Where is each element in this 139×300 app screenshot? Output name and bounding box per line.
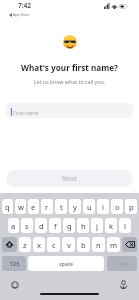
staticText: x <box>37 240 41 250</box>
staticText: a <box>11 221 16 231</box>
staticText: e <box>31 202 36 212</box>
button[interactable]: space <box>28 256 104 271</box>
button[interactable]: n <box>92 237 105 252</box>
button[interactable]: e <box>28 199 39 214</box>
staticText: space <box>59 260 74 267</box>
button[interactable]: j <box>91 218 103 233</box>
staticText: n <box>96 240 101 250</box>
staticText: 123 <box>10 260 19 267</box>
button[interactable]: y <box>69 199 81 214</box>
button[interactable]: x <box>33 237 45 252</box>
staticText: u <box>87 202 92 212</box>
staticText: m <box>110 240 118 250</box>
button[interactable]: g <box>63 218 75 233</box>
staticText: z <box>23 240 27 250</box>
staticText: v <box>67 240 71 250</box>
staticText: j <box>96 221 98 231</box>
staticText: o <box>115 202 120 212</box>
button[interactable]: w <box>15 199 26 214</box>
button[interactable]: s <box>21 218 33 233</box>
button[interactable]: r <box>41 199 53 214</box>
button[interactable]: 123 <box>2 256 26 271</box>
staticText: r <box>45 202 49 212</box>
button[interactable]: First name <box>6 103 133 118</box>
button[interactable]: next <box>107 256 137 271</box>
staticText: b <box>81 240 86 250</box>
staticText: next <box>117 260 128 267</box>
staticText: y <box>73 202 77 212</box>
staticText: d <box>39 221 44 231</box>
button[interactable]: u <box>83 199 95 214</box>
button[interactable]: o <box>111 199 123 214</box>
button[interactable]: b <box>77 237 90 252</box>
staticText: q <box>5 202 10 212</box>
button[interactable]: d <box>35 218 47 233</box>
button[interactable]: c <box>47 237 60 252</box>
staticText: k <box>109 221 114 231</box>
button[interactable]: k <box>105 218 117 233</box>
button[interactable]: v <box>62 237 75 252</box>
button[interactable]: Emoji keyboard <box>11 281 19 289</box>
button[interactable]: Backspace <box>122 237 137 252</box>
button[interactable]: a <box>8 218 19 233</box>
staticText: g <box>67 221 72 231</box>
button[interactable]: p <box>125 199 137 214</box>
staticText: w <box>18 202 24 212</box>
button[interactable]: Next <box>6 170 133 187</box>
staticText: What's your first name? <box>0 62 139 73</box>
staticText: f <box>54 221 57 231</box>
staticText: First name <box>13 109 39 116</box>
button[interactable]: l <box>119 218 131 233</box>
staticText: App Store <box>13 12 30 17</box>
staticText: h <box>81 221 86 231</box>
button[interactable]: f <box>49 218 61 233</box>
staticText: p <box>129 202 134 212</box>
button[interactable]: h <box>77 218 89 233</box>
button[interactable]: z <box>19 237 31 252</box>
button[interactable]: t <box>55 199 67 214</box>
button[interactable]: i <box>97 199 109 214</box>
staticText: s <box>25 221 29 231</box>
button[interactable]: m <box>107 237 120 252</box>
staticText: t <box>60 202 63 212</box>
button[interactable]: Shift <box>2 237 17 252</box>
staticText: l <box>124 221 126 231</box>
staticText: 7:42 <box>18 1 32 10</box>
staticText: c <box>52 240 56 250</box>
button[interactable]: q <box>2 199 13 214</box>
staticText: Let us know what to call you. <box>0 78 139 85</box>
staticText: i <box>102 202 104 212</box>
button[interactable]: Dictate <box>120 280 127 289</box>
staticText: Next <box>62 174 77 183</box>
